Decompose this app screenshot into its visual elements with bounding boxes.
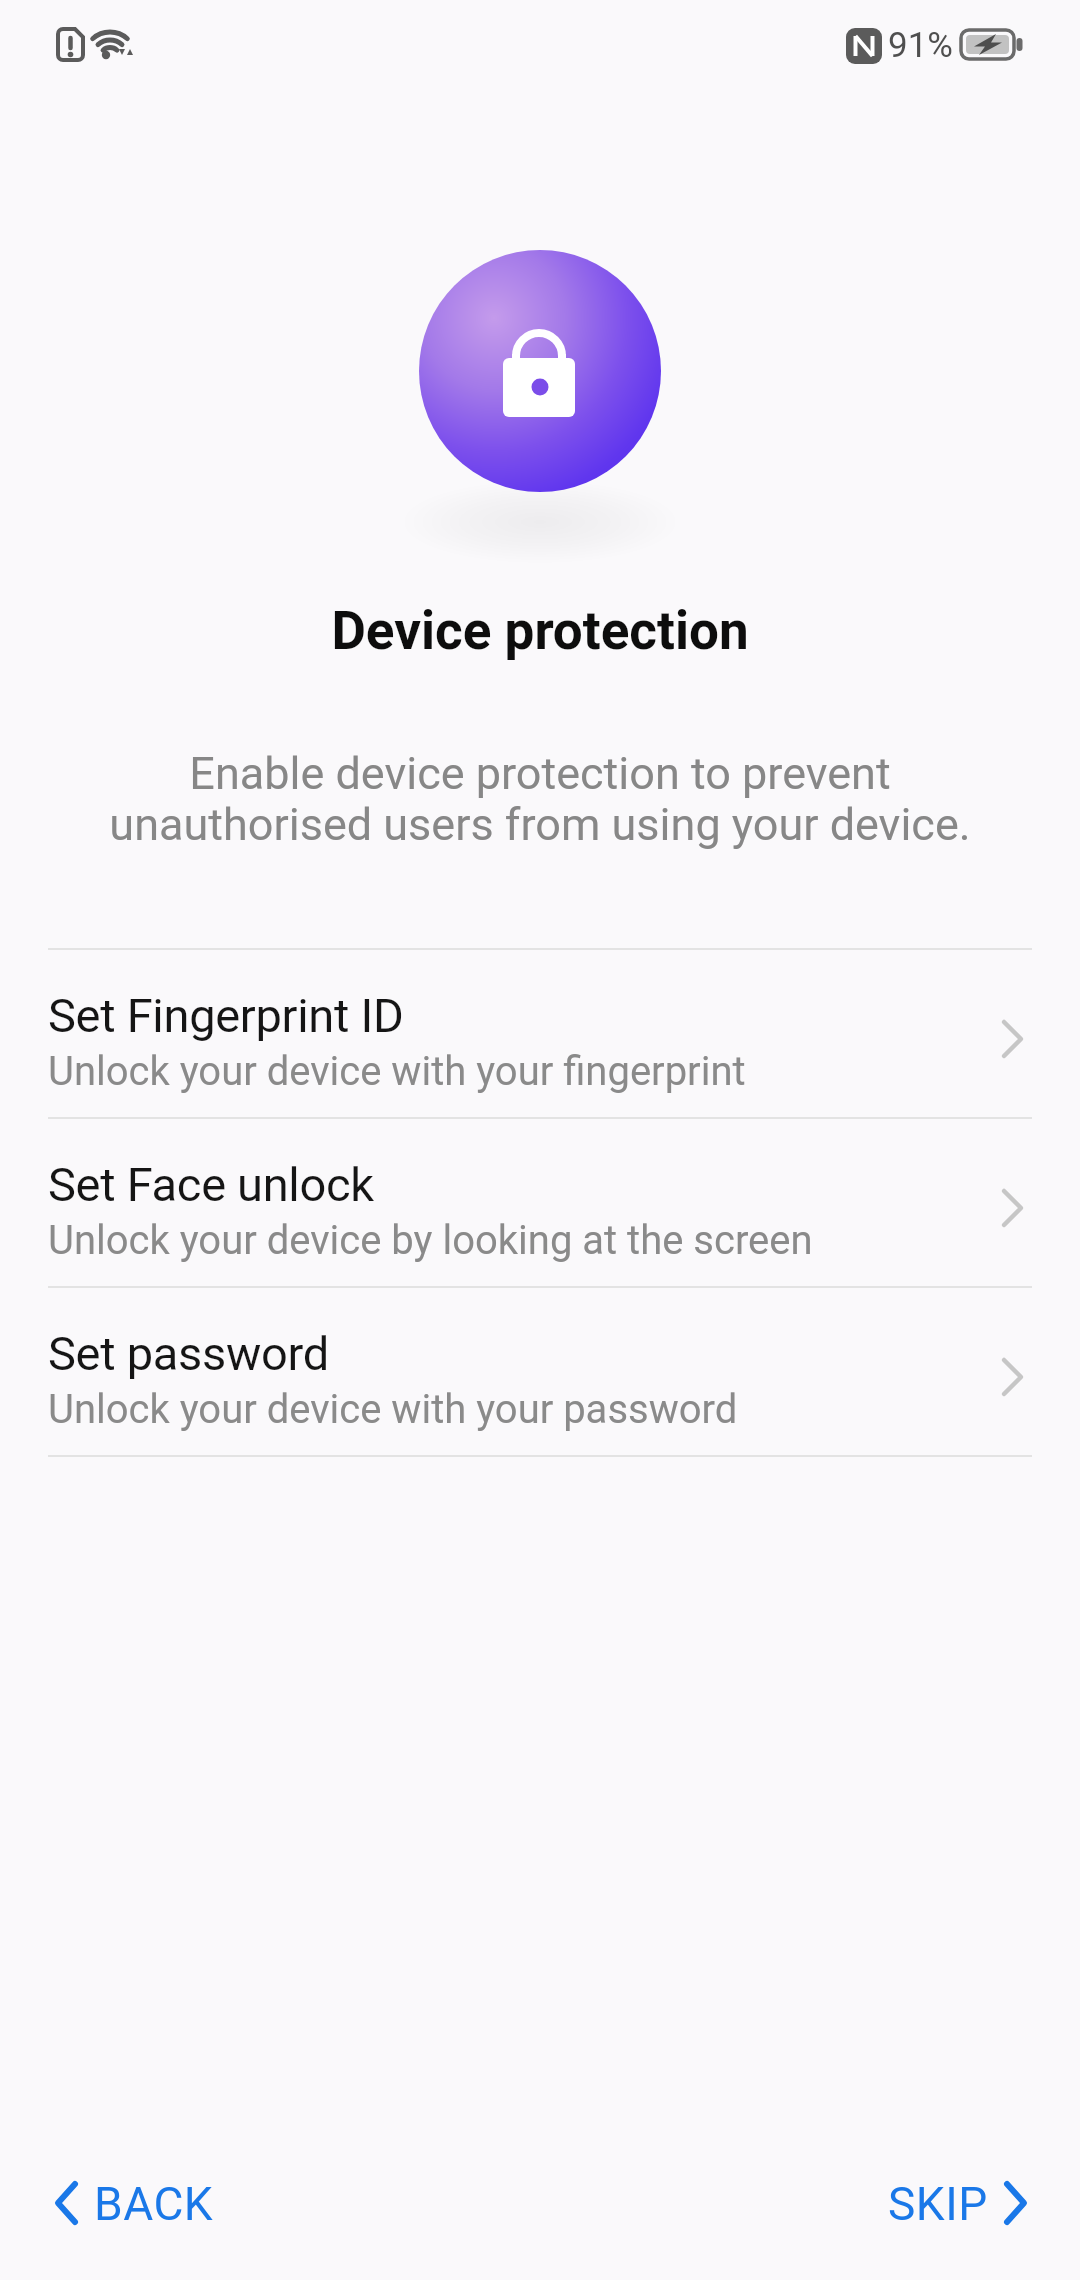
button[interactable]: Set password: [0, 1286, 1080, 1455]
staticText: Set password: [48, 1326, 329, 1381]
button[interactable]: Set Face unlock: [0, 1117, 1080, 1286]
staticText: unauthorised users from using your devic…: [0, 798, 1080, 851]
staticText: Set Fingerprint ID: [48, 988, 404, 1043]
button[interactable]: SKIP: [888, 2177, 1028, 2231]
staticText: SKIP: [888, 2177, 988, 2231]
staticText: Unlock your device by looking at the scr…: [48, 1217, 813, 1264]
staticText: Set Face unlock: [48, 1157, 374, 1212]
staticText: BACK: [94, 2177, 214, 2231]
staticText: Unlock your device with your fingerprint: [48, 1048, 746, 1095]
staticText: 91%: [888, 25, 953, 66]
staticText: Unlock your device with your password: [48, 1386, 738, 1433]
staticText: Enable device protection to prevent: [0, 747, 1080, 800]
button[interactable]: Set Fingerprint ID: [0, 948, 1080, 1117]
staticText: Device protection: [0, 600, 1080, 662]
button[interactable]: BACK: [54, 2177, 214, 2231]
